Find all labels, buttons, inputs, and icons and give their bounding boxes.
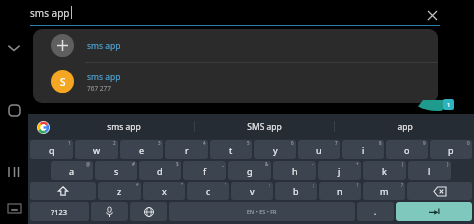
button[interactable]: x	[143, 182, 185, 200]
button[interactable]: Hide keyboard	[0, 195, 28, 221]
staticText: w	[93, 144, 101, 156]
staticText: d	[157, 165, 163, 177]
button[interactable]: f	[183, 161, 226, 180]
button[interactable]: i	[342, 140, 384, 159]
staticText: 4	[203, 140, 206, 146]
staticText: 7	[335, 140, 338, 146]
button[interactable]: c	[187, 182, 229, 200]
button[interactable]: g	[228, 161, 271, 180]
staticText: a	[69, 165, 75, 177]
staticText: 3	[158, 140, 161, 146]
staticText: e	[139, 144, 145, 156]
staticText: q	[49, 144, 55, 156]
button[interactable]: h	[273, 161, 316, 180]
button[interactable]: Back	[0, 33, 28, 63]
staticText: z	[117, 185, 122, 197]
staticText: sms app	[87, 40, 121, 52]
staticText: o	[404, 144, 410, 156]
button[interactable]: S	[33, 63, 438, 100]
button[interactable]: l	[408, 161, 451, 180]
button[interactable]: .	[357, 202, 394, 221]
button[interactable]: z	[98, 182, 141, 200]
button[interactable]: v	[231, 182, 273, 200]
staticText: #	[132, 161, 135, 167]
button[interactable]: t	[210, 140, 252, 159]
button[interactable]: sms app	[30, 2, 442, 28]
staticText: u	[316, 144, 322, 156]
button[interactable]: d	[139, 161, 181, 180]
button[interactable]: SMS app	[195, 114, 334, 139]
staticText: 1	[447, 101, 451, 109]
button[interactable]: u	[298, 140, 340, 159]
staticText: i	[362, 144, 365, 156]
staticText: j	[338, 165, 341, 177]
staticText: ?123	[51, 207, 68, 217]
button[interactable]: b	[275, 182, 317, 200]
staticText: 8	[379, 140, 382, 146]
button[interactable]: n	[319, 182, 361, 200]
button[interactable]: EN • ES • FR	[169, 202, 355, 221]
button[interactable]: Change language	[130, 202, 167, 221]
staticText: 6	[291, 140, 294, 146]
staticText: )	[447, 161, 449, 167]
button[interactable]: a	[51, 161, 93, 180]
staticText: r	[185, 144, 189, 156]
button[interactable]: sms app	[33, 29, 438, 62]
button[interactable]: r	[165, 140, 208, 159]
staticText: *	[136, 182, 139, 188]
staticText: h	[292, 165, 298, 177]
button[interactable]: Home	[0, 96, 28, 124]
button[interactable]: p	[430, 140, 472, 159]
button[interactable]: Recents	[0, 158, 28, 186]
staticText: +	[356, 161, 359, 167]
staticText: n	[337, 185, 343, 197]
staticText: y	[273, 144, 278, 156]
staticText: _	[222, 161, 224, 167]
staticText: sms app	[87, 71, 121, 83]
button[interactable]: y	[254, 140, 296, 159]
staticText: -	[312, 161, 314, 167]
staticText: !	[357, 182, 359, 188]
button[interactable]: k	[363, 161, 406, 180]
staticText: k	[382, 165, 387, 177]
staticText: &	[265, 161, 269, 167]
button[interactable]: ?123	[30, 202, 89, 221]
staticText: v	[250, 185, 255, 197]
staticText: '	[225, 182, 227, 188]
button[interactable]: o	[386, 140, 428, 159]
button[interactable]: Voice input	[91, 202, 128, 221]
staticText: 5	[247, 140, 250, 146]
staticText: .	[374, 206, 377, 217]
staticText: sms app	[30, 6, 70, 20]
staticText: t	[229, 144, 233, 156]
button[interactable]: Shift	[30, 182, 96, 200]
button[interactable]: Google search	[32, 116, 54, 138]
staticText: :	[269, 182, 271, 188]
button[interactable]: app	[335, 114, 474, 139]
staticText: @	[86, 161, 91, 167]
staticText: (	[402, 161, 404, 167]
button[interactable]: w	[75, 140, 118, 159]
button[interactable]: e	[120, 140, 163, 159]
staticText: f	[203, 165, 207, 177]
staticText: app	[397, 121, 413, 133]
staticText: g	[247, 165, 253, 177]
staticText: 2	[113, 140, 116, 146]
button[interactable]: sms app	[54, 114, 194, 139]
staticText: p	[448, 144, 454, 156]
button[interactable]: q	[30, 140, 73, 159]
staticText: ;	[313, 182, 315, 188]
button[interactable]: Search	[396, 202, 472, 221]
staticText: 0	[467, 140, 470, 146]
staticText: l	[428, 165, 431, 177]
staticText: ?	[401, 182, 403, 188]
button[interactable]: Backspace	[407, 182, 472, 200]
staticText: 9	[423, 140, 426, 146]
staticText: m	[380, 185, 389, 197]
button[interactable]: Clear search	[420, 3, 444, 27]
button[interactable]: s	[95, 161, 137, 180]
staticText: EN • ES • FR	[247, 208, 277, 215]
staticText: 1	[68, 140, 71, 146]
button[interactable]: j	[318, 161, 361, 180]
button[interactable]: m	[363, 182, 405, 200]
